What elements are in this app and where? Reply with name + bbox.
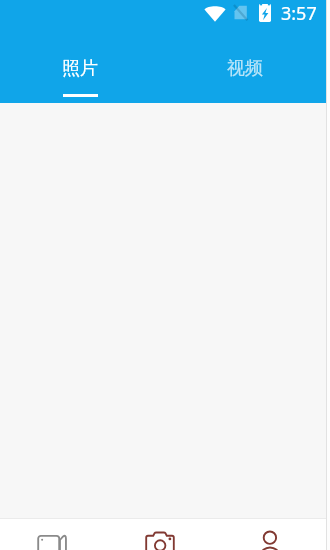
button[interactable]: Profile [217, 519, 326, 550]
staticText: 视频 [227, 57, 263, 80]
staticText: 3:57 [281, 1, 317, 26]
button[interactable]: 视频 [163, 26, 326, 103]
staticText: 照片 [62, 57, 98, 80]
button[interactable]: 照片 [0, 26, 163, 103]
button[interactable]: Camera [108, 519, 217, 550]
button[interactable]: Video [0, 519, 108, 550]
